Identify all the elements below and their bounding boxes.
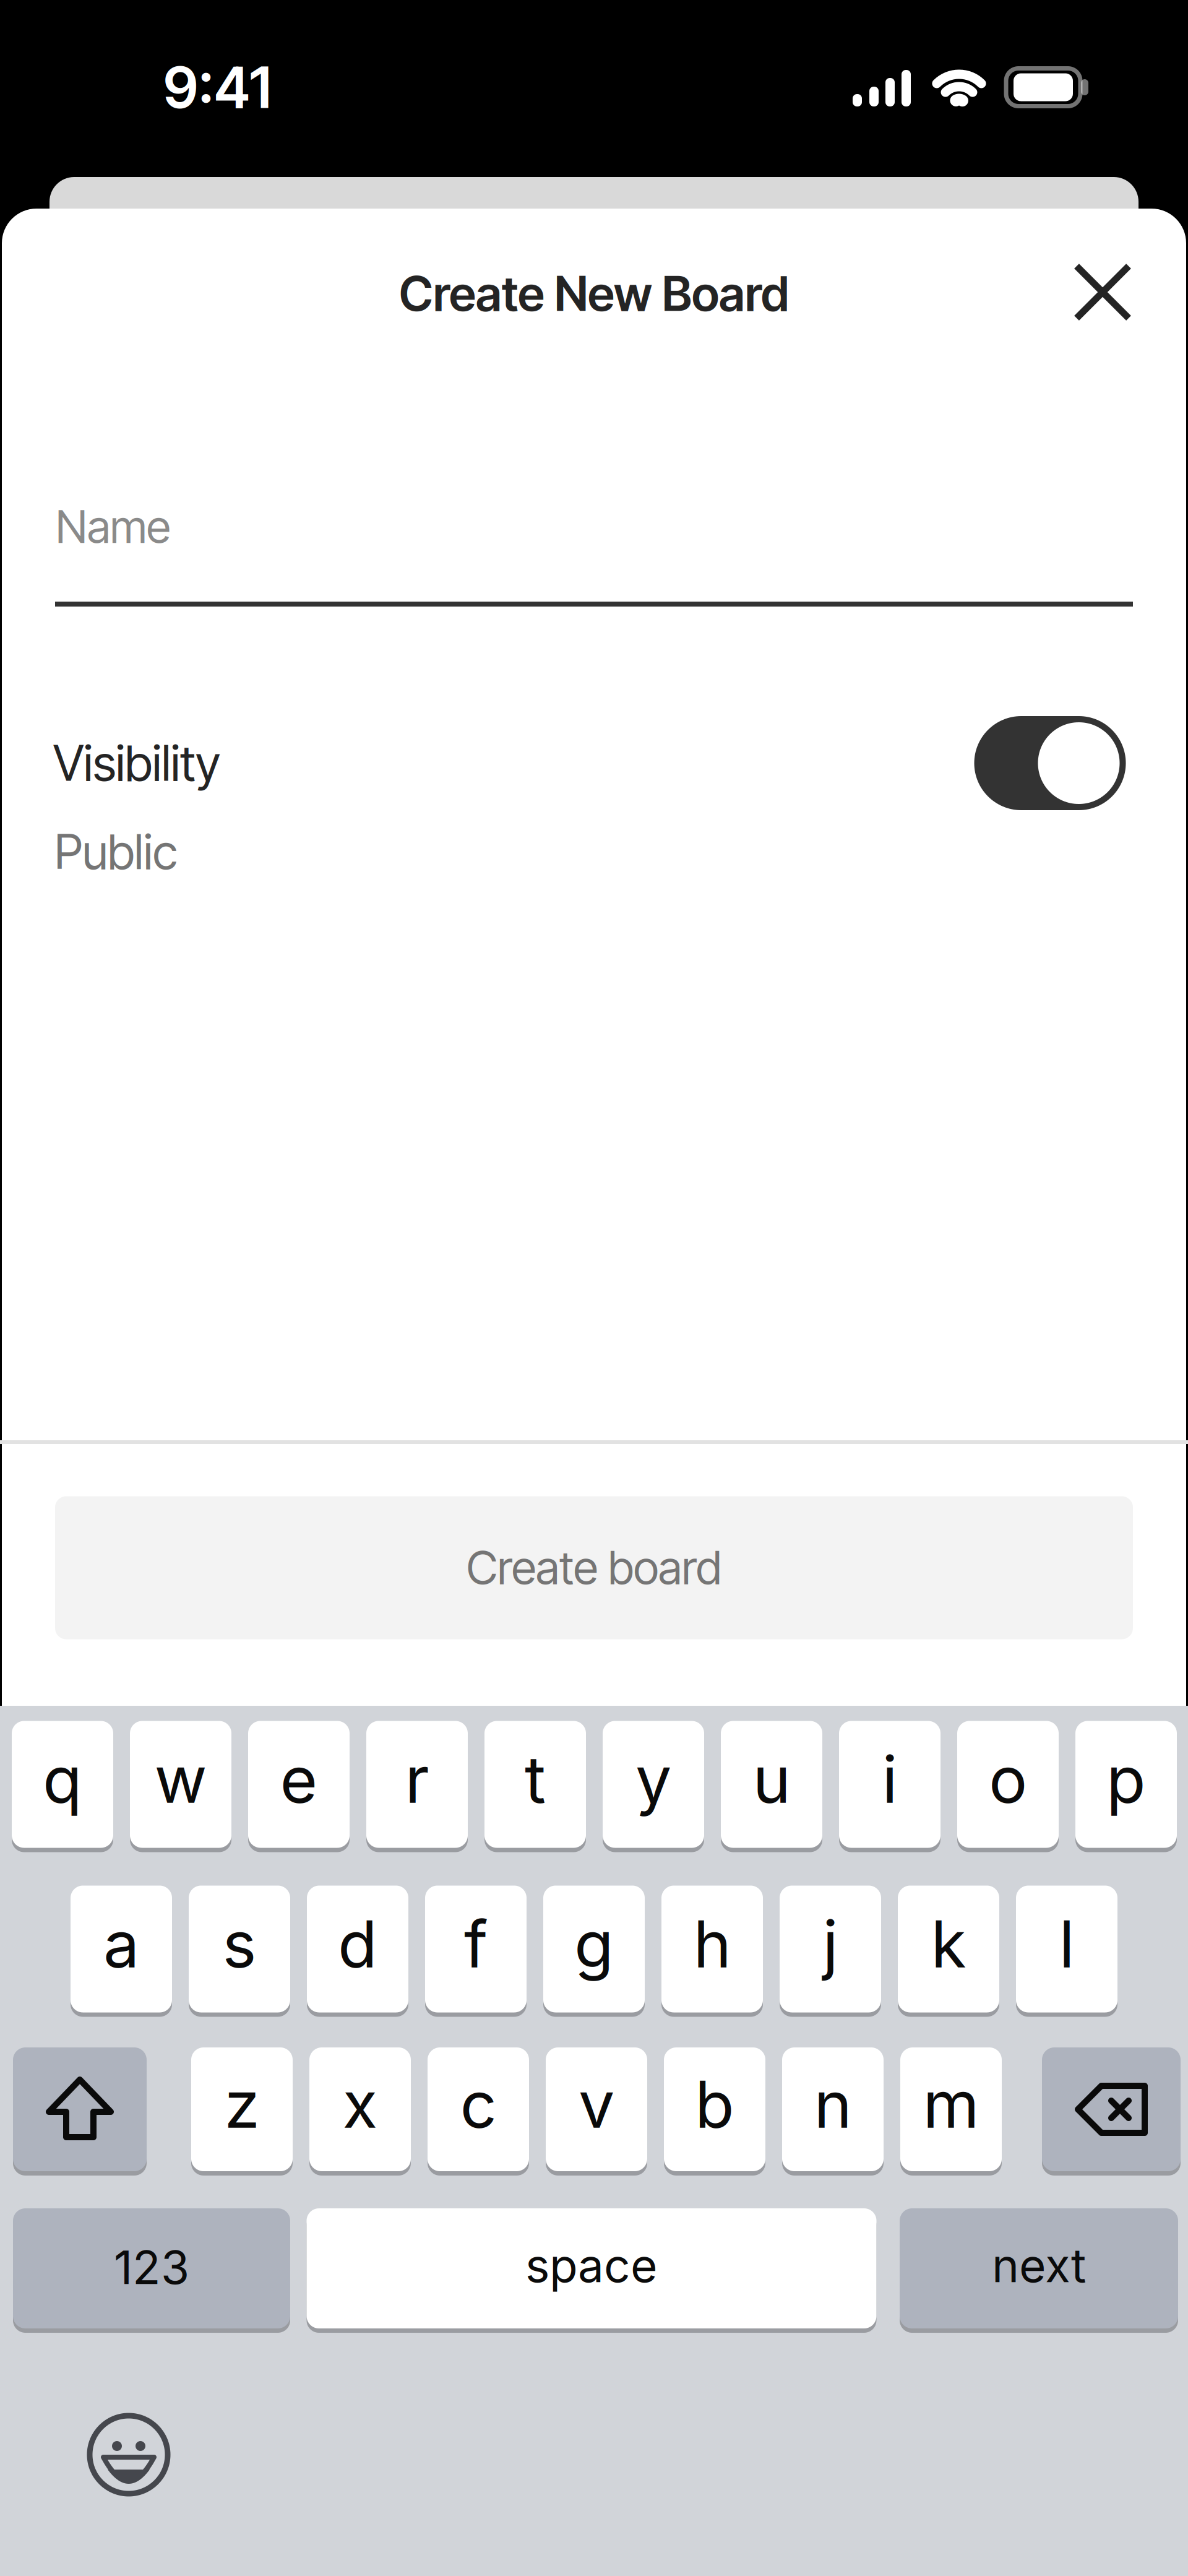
- button[interactable]: 123: [13, 2206, 290, 2331]
- staticText: x: [342, 2065, 378, 2143]
- staticText: n: [814, 2065, 852, 2143]
- button[interactable]: k: [898, 1883, 999, 2015]
- staticText: e: [280, 1741, 318, 1818]
- button[interactable]: b: [664, 2045, 765, 2173]
- button[interactable]: i: [839, 1719, 940, 1850]
- staticText: p: [1106, 1741, 1146, 1818]
- staticText: l: [1059, 1905, 1074, 1983]
- staticText: Public: [54, 823, 178, 881]
- staticText: v: [579, 2065, 614, 2143]
- staticText: b: [695, 2065, 734, 2143]
- staticText: t: [525, 1741, 546, 1818]
- staticText: j: [823, 1905, 838, 1983]
- staticText: Create board: [467, 1540, 721, 1595]
- button[interactable]: o: [957, 1719, 1059, 1850]
- staticText: next: [992, 2237, 1086, 2293]
- button[interactable]: Shift: [13, 2045, 147, 2173]
- button[interactable]: Delete: [1042, 2045, 1181, 2173]
- staticText: r: [405, 1741, 429, 1818]
- staticText: f: [464, 1905, 488, 1983]
- button[interactable]: v: [546, 2045, 647, 2173]
- button[interactable]: h: [661, 1883, 763, 2015]
- button[interactable]: u: [721, 1719, 822, 1850]
- staticText: Create New Board: [399, 264, 789, 322]
- button[interactable]: Create board: [55, 1496, 1133, 1639]
- staticText: g: [574, 1905, 614, 1983]
- button[interactable]: next: [900, 2206, 1178, 2331]
- staticText: u: [753, 1741, 790, 1818]
- staticText: z: [224, 2065, 260, 2143]
- staticText: o: [989, 1741, 1027, 1818]
- staticText: w: [154, 1741, 207, 1818]
- staticText: space: [525, 2237, 658, 2293]
- staticText: Visibility: [53, 734, 220, 793]
- button[interactable]: z: [191, 2045, 293, 2173]
- button[interactable]: Emoji: [85, 2411, 172, 2498]
- staticText: k: [931, 1905, 966, 1983]
- button[interactable]: x: [309, 2045, 411, 2173]
- button[interactable]: Visibility: [974, 716, 1126, 810]
- button[interactable]: space: [307, 2206, 876, 2331]
- staticText: h: [693, 1905, 731, 1983]
- button[interactable]: y: [603, 1719, 704, 1850]
- button[interactable]: a: [71, 1883, 172, 2015]
- button[interactable]: t: [484, 1719, 586, 1850]
- button[interactable]: s: [189, 1883, 290, 2015]
- staticText: c: [460, 2065, 497, 2143]
- staticText: 123: [114, 2239, 189, 2295]
- button[interactable]: d: [307, 1883, 408, 2015]
- button[interactable]: l: [1016, 1883, 1117, 2015]
- button[interactable]: e: [248, 1719, 350, 1850]
- button[interactable]: w: [130, 1719, 231, 1850]
- button[interactable]: Name: [55, 458, 1133, 631]
- button[interactable]: m: [900, 2045, 1002, 2173]
- button[interactable]: f: [425, 1883, 527, 2015]
- staticText: s: [222, 1905, 256, 1983]
- button[interactable]: r: [366, 1719, 468, 1850]
- button[interactable]: g: [543, 1883, 645, 2015]
- button[interactable]: n: [782, 2045, 884, 2173]
- staticText: d: [338, 1905, 377, 1983]
- button[interactable]: j: [780, 1883, 881, 2015]
- staticText: y: [635, 1741, 671, 1818]
- button[interactable]: Close: [1070, 260, 1135, 324]
- staticText: i: [882, 1741, 897, 1818]
- button[interactable]: c: [428, 2045, 529, 2173]
- staticText: a: [103, 1905, 139, 1983]
- staticText: 9:41: [163, 53, 271, 122]
- staticText: q: [43, 1741, 82, 1818]
- button[interactable]: p: [1075, 1719, 1177, 1850]
- staticText: Name: [56, 500, 170, 554]
- staticText: m: [923, 2065, 979, 2143]
- button[interactable]: q: [12, 1719, 113, 1850]
